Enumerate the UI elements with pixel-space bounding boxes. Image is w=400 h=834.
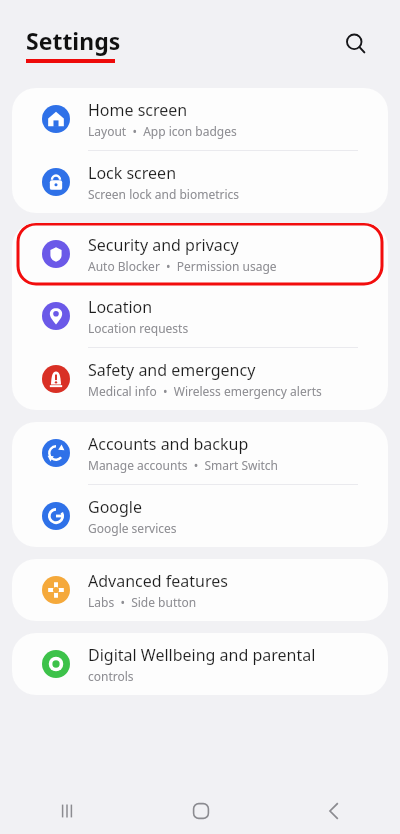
button[interactable]: Search xyxy=(334,22,378,66)
staticText: Home screen xyxy=(88,99,188,121)
button[interactable]: Security and privacy xyxy=(12,223,388,285)
staticText: Safety and emergency xyxy=(88,359,256,381)
staticText: Location xyxy=(88,296,153,318)
staticText: Auto Blocker • Permission usage xyxy=(88,258,277,274)
staticText: Medical info • Wireless emergency alerts xyxy=(88,383,322,399)
button[interactable]: Location xyxy=(12,285,388,348)
staticText: Security and privacy xyxy=(88,234,239,256)
button[interactable]: Lock screen xyxy=(12,151,388,213)
staticText: Google xyxy=(88,496,143,518)
staticText: Location requests xyxy=(88,320,189,336)
staticText: Lock screen xyxy=(88,162,177,184)
staticText: Screen lock and biometrics xyxy=(88,186,240,202)
staticText: Settings xyxy=(26,25,121,56)
button[interactable]: Recent apps xyxy=(0,787,134,834)
button[interactable]: Advanced features xyxy=(12,559,388,621)
button[interactable]: Safety and emergency xyxy=(12,348,388,410)
button[interactable]: Digital Wellbeing and parental xyxy=(12,633,388,695)
button[interactable]: Home screen xyxy=(12,88,388,151)
staticText: controls xyxy=(88,668,134,684)
button[interactable]: Home xyxy=(134,787,267,834)
button[interactable]: Back xyxy=(267,787,400,834)
button[interactable]: Google xyxy=(12,485,388,547)
staticText: Labs • Side button xyxy=(88,594,197,610)
staticText: Google services xyxy=(88,520,177,536)
staticText: Digital Wellbeing and parental xyxy=(88,644,316,666)
staticText: Manage accounts • Smart Switch xyxy=(88,457,279,473)
button[interactable]: Accounts and backup xyxy=(12,422,388,485)
staticText: Advanced features xyxy=(88,570,228,592)
staticText: Layout • App icon badges xyxy=(88,123,237,139)
staticText: Accounts and backup xyxy=(88,433,249,455)
